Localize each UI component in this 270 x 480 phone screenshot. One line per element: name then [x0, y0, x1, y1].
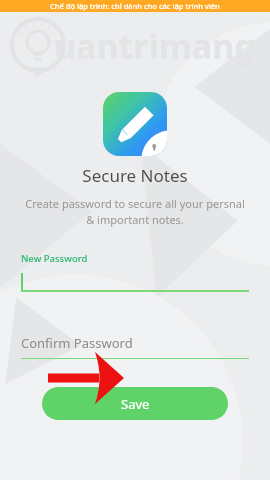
staticText: Chế độ lập trình: chỉ dành cho các lập t…	[50, 1, 220, 11]
staticText: uantrimang	[54, 23, 256, 69]
staticText: Create password to secure all your persn…	[22, 196, 248, 227]
button[interactable]: New Password	[21, 252, 249, 292]
staticText: Secure Notes	[82, 164, 188, 187]
button[interactable]: Save	[42, 387, 228, 420]
staticText: New Password	[21, 252, 88, 265]
other: Annotation arrow pointing to Save	[0, 0, 270, 480]
button[interactable]: Confirm Password	[21, 334, 249, 359]
staticText: Confirm Password	[21, 334, 133, 352]
staticText: Save	[121, 395, 150, 413]
